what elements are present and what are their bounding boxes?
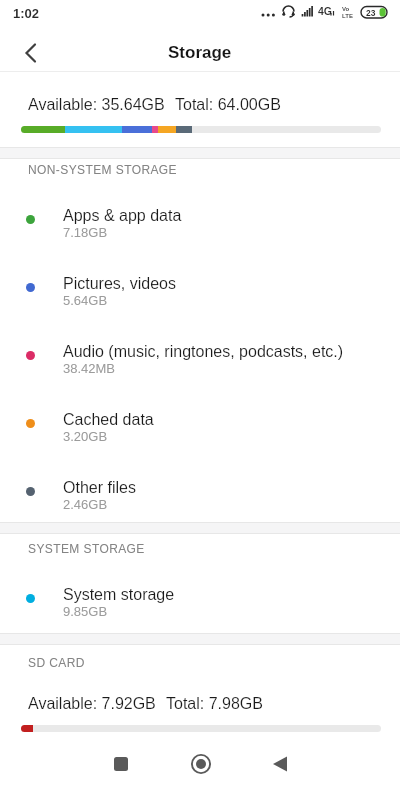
staticText: Available: 35.64GB: [28, 96, 165, 114]
button[interactable]: [13, 35, 49, 71]
staticText: SD CARD: [28, 656, 85, 669]
button[interactable]: [161, 746, 240, 782]
button[interactable]: [81, 746, 161, 782]
staticText: Storage: [168, 43, 232, 62]
staticText: 9.85GB: [63, 604, 108, 619]
button[interactable]: Audio (music, ringtones, podcasts, etc.): [0, 326, 400, 394]
staticText: Cached data: [63, 411, 154, 429]
staticText: 7.18GB: [63, 225, 108, 240]
staticText: 1:02: [13, 6, 40, 21]
staticText: Vo: [342, 6, 350, 13]
button[interactable]: System storage: [0, 569, 400, 633]
staticText: SYSTEM STORAGE: [28, 542, 145, 555]
button[interactable]: Pictures, videos: [0, 258, 400, 326]
staticText: NON-SYSTEM STORAGE: [28, 163, 177, 176]
button[interactable]: [240, 746, 319, 782]
staticText: 23: [366, 8, 376, 17]
button[interactable]: Apps & app data: [0, 190, 400, 258]
staticText: Available: 7.92GB: [28, 695, 156, 713]
staticText: Apps & app data: [63, 207, 182, 225]
staticText: System storage: [63, 586, 175, 604]
staticText: Total: 64.00GB: [175, 96, 281, 114]
staticText: 38.42MB: [63, 361, 116, 376]
button[interactable]: Other files: [0, 462, 400, 522]
staticText: Other files: [63, 479, 136, 497]
staticText: Audio (music, ringtones, podcasts, etc.): [63, 343, 344, 361]
staticText: LTE: [342, 13, 353, 20]
staticText: Pictures, videos: [63, 275, 176, 293]
staticText: 3.20GB: [63, 429, 108, 444]
staticText: 4G: [318, 5, 333, 17]
button[interactable]: Cached data: [0, 394, 400, 462]
staticText: Total: 7.98GB: [166, 695, 263, 713]
staticText: 5.64GB: [63, 293, 108, 308]
staticText: 2.46GB: [63, 497, 108, 512]
